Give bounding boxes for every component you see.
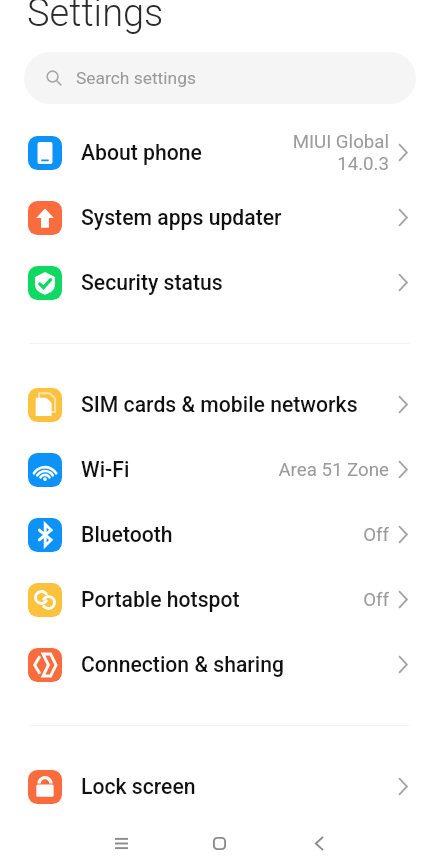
button[interactable]: Lock screen <box>0 754 440 819</box>
button[interactable]: Security status <box>0 250 440 315</box>
button[interactable]: System apps updater <box>0 185 440 250</box>
staticText: Bluetooth <box>81 522 363 547</box>
staticText: Wi-Fi <box>81 457 278 482</box>
button[interactable]: SIM cards & mobile networks <box>0 372 440 437</box>
staticText: Search settings <box>76 68 196 88</box>
staticText: Portable hotspot <box>81 587 363 612</box>
staticText: Security status <box>81 270 399 295</box>
staticText: About phone <box>81 140 292 165</box>
staticText: MIUI Global 14.0.3 <box>292 131 389 175</box>
button[interactable]: Connection & sharing <box>0 632 440 697</box>
staticText: Off <box>363 589 389 611</box>
button[interactable]: Portable hotspot <box>0 567 440 632</box>
button[interactable]: Wi-Fi <box>0 437 440 502</box>
button[interactable]: About phone <box>0 120 440 185</box>
button[interactable]: Home <box>170 828 269 858</box>
staticText: Settings <box>27 0 164 36</box>
staticText: Connection & sharing <box>81 652 399 677</box>
button[interactable]: Recent apps <box>72 828 170 858</box>
staticText: Off <box>363 524 389 546</box>
staticText: Lock screen <box>81 774 399 799</box>
button[interactable]: Search settings <box>24 52 416 104</box>
button[interactable]: Bluetooth <box>0 502 440 567</box>
button[interactable]: Back <box>269 828 368 858</box>
staticText: System apps updater <box>81 205 399 230</box>
staticText: SIM cards & mobile networks <box>81 392 399 417</box>
staticText: Area 51 Zone <box>278 459 389 481</box>
